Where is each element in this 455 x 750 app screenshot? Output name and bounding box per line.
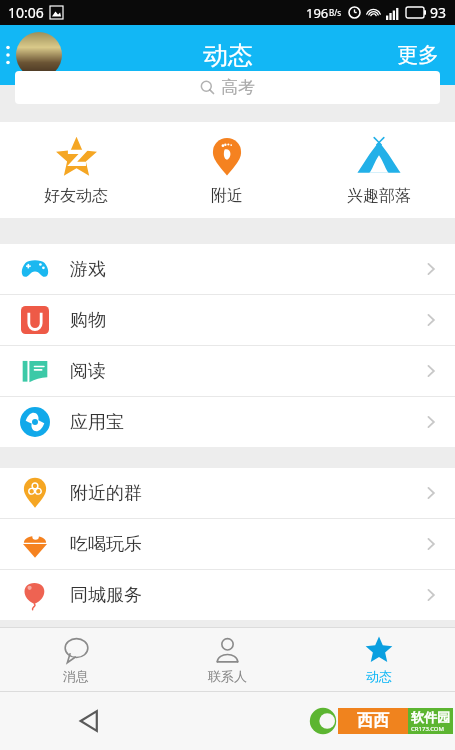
button[interactable]: 动态 xyxy=(303,628,455,691)
staticText: 同城服务 xyxy=(70,584,142,607)
staticText: B/s xyxy=(329,7,342,18)
staticText: 吃喝玩乐 xyxy=(70,533,142,556)
staticText: 更多 xyxy=(397,42,439,68)
staticText: 93 xyxy=(430,3,447,22)
staticText: 动态 xyxy=(366,668,392,684)
staticText: 游戏 xyxy=(70,258,106,281)
staticText: 兴趣部落 xyxy=(347,186,411,206)
staticText: 消息 xyxy=(63,668,89,684)
button[interactable]: 好友动态 xyxy=(0,122,151,218)
button[interactable]: 游戏 xyxy=(0,244,455,294)
staticText: 动态 xyxy=(203,40,253,71)
button[interactable]: 附近 xyxy=(151,122,303,218)
staticText: 附近 xyxy=(211,186,243,206)
staticText: 软件园 xyxy=(411,709,450,725)
button[interactable]: 阅读 xyxy=(0,346,455,396)
button[interactable]: 购物 xyxy=(0,295,455,345)
staticText: 阅读 xyxy=(70,360,106,383)
staticText: 196 xyxy=(306,4,329,22)
button[interactable]: 吃喝玩乐 xyxy=(0,519,455,569)
button[interactable]: 消息 xyxy=(0,628,151,691)
staticText: 好友动态 xyxy=(44,186,108,206)
button[interactable]: Back xyxy=(72,704,106,738)
staticText: 应用宝 xyxy=(70,411,124,434)
staticText: 联系人 xyxy=(208,668,247,684)
button[interactable]: 更多 xyxy=(381,25,455,85)
button[interactable]: 附近的群 xyxy=(0,468,455,518)
button[interactable]: 高考 xyxy=(15,71,440,104)
button[interactable]: Profile avatar xyxy=(16,32,62,78)
staticText: 高考 xyxy=(221,77,255,98)
button[interactable]: 同城服务 xyxy=(0,570,455,620)
staticText: 购物 xyxy=(70,309,106,332)
button[interactable]: 兴趣部落 xyxy=(303,122,455,218)
button[interactable]: 应用宝 xyxy=(0,397,455,447)
staticText: 附近的群 xyxy=(70,482,142,505)
button[interactable]: 联系人 xyxy=(151,628,303,691)
staticText: 西西 xyxy=(357,711,389,731)
staticText: CR173.COM xyxy=(411,725,444,733)
staticText: 10:06 xyxy=(8,3,44,22)
